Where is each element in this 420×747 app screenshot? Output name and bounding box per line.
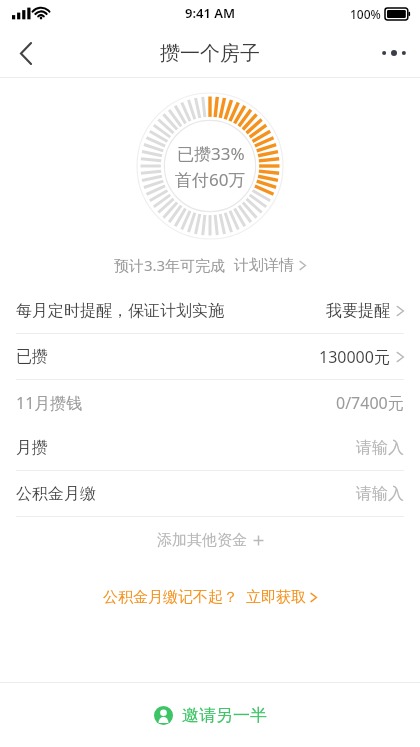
staticText: 9:41 AM [185,4,236,22]
staticText: 攒一个房子 [160,41,260,66]
button[interactable]: 11月攒钱 [0,380,420,425]
staticText: 我要提醒 [326,301,390,321]
button[interactable]: 添加其他资金 [0,517,420,563]
button[interactable]: 公积金月缴记不起？ [0,577,420,617]
button[interactable]: 已攒 [0,334,420,380]
button[interactable]: 邀请另一半 [0,683,420,747]
button[interactable]: Back [0,28,52,78]
staticText: 立即获取 [246,588,306,607]
staticText: 公积金月缴记不起？ [103,588,238,607]
staticText: 11月攒钱 [16,392,83,414]
button[interactable]: 月攒 [0,425,420,471]
staticText: 每月定时提醒，保证计划实施 [16,301,224,321]
button[interactable]: More options [368,28,420,78]
staticText: 已攒33% [177,142,245,165]
staticText: 已攒 [16,347,48,367]
button[interactable]: 公积金月缴 [0,471,420,517]
button[interactable]: 预计3.3年可完成 [0,246,420,284]
staticText: 添加其他资金 [157,531,247,550]
staticText: 月攒 [16,438,48,458]
staticText: 计划详情 [234,256,294,275]
staticText: 公积金月缴 [16,484,96,504]
staticText: 请输入 [356,438,404,458]
staticText: 130000元 [319,346,390,368]
staticText: 邀请另一半 [182,705,267,726]
staticText: 0/7400元 [336,392,404,414]
staticText: 首付60万 [175,168,246,191]
staticText: 100% [350,6,381,22]
staticText: 请输入 [356,484,404,504]
button[interactable]: 每月定时提醒，保证计划实施 [0,288,420,334]
staticText: 预计3.3年可完成 [114,255,226,275]
